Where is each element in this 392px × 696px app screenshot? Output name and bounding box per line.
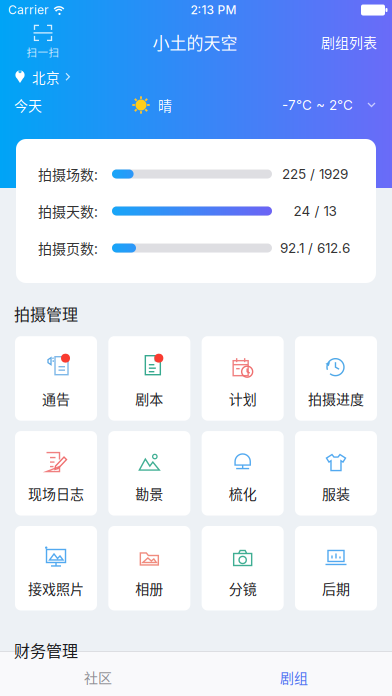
button[interactable]: 相册 — [108, 526, 190, 610]
staticText: 接戏照片 — [28, 578, 84, 598]
button[interactable]: 后期 — [295, 526, 377, 610]
staticText: 拍摄管理 — [14, 302, 78, 325]
staticText: 后期 — [322, 578, 350, 598]
button[interactable]: 梳化 — [202, 431, 284, 516]
staticText: 扫一扫 — [26, 44, 59, 60]
button[interactable]: 剧本 — [108, 336, 190, 421]
button[interactable]: 服装 — [295, 431, 377, 516]
staticText: 92.1 / 612.6 — [280, 240, 350, 256]
staticText: 拍摄场数: — [38, 164, 98, 184]
staticText: 分镜 — [229, 578, 257, 598]
staticText: 24 / 13 — [293, 203, 336, 219]
staticText: 剧组列表 — [321, 32, 377, 52]
staticText: 北京 — [32, 67, 60, 87]
staticText: 剧组 — [280, 667, 308, 687]
staticText: 勘景 — [135, 483, 163, 503]
staticText: 拍摄进度 — [308, 388, 364, 408]
staticText: 晴 — [158, 95, 172, 115]
staticText: 通告 — [42, 388, 70, 408]
staticText: 服装 — [322, 483, 350, 503]
staticText: 2:13 PM — [190, 3, 236, 17]
button[interactable]: 勘景 — [108, 431, 190, 516]
staticText: 社区 — [84, 667, 112, 687]
staticText: 现场日志 — [28, 483, 84, 503]
staticText: -7°C ~ 2°C — [282, 97, 353, 113]
staticText: 拍摄天数: — [38, 201, 98, 221]
staticText: 计划 — [229, 388, 257, 408]
button[interactable]: 通告 — [15, 336, 97, 421]
staticText: 小土的天空 — [152, 30, 237, 54]
staticText: 剧本 — [135, 388, 163, 408]
button[interactable]: 北京 — [0, 64, 71, 90]
staticText: Carrier — [8, 3, 49, 17]
staticText: 梳化 — [229, 483, 257, 503]
staticText: 相册 — [135, 578, 163, 598]
button[interactable]: 剧组 — [196, 652, 392, 696]
staticText: 拍摄页数: — [38, 238, 98, 258]
button[interactable]: 分镜 — [202, 526, 284, 610]
button[interactable]: 接戏照片 — [15, 526, 97, 610]
button[interactable]: 社区 — [0, 652, 196, 696]
button[interactable]: 扫一扫 — [13, 24, 73, 60]
button[interactable]: 计划 — [202, 336, 284, 421]
button[interactable]: 拍摄进度 — [295, 336, 377, 421]
button[interactable]: 现场日志 — [15, 431, 97, 516]
staticText: 财务管理 — [14, 638, 78, 662]
staticText: 225 / 1929 — [282, 166, 348, 182]
button[interactable]: 剧组列表 — [317, 24, 377, 60]
staticText: 今天 — [14, 95, 42, 115]
